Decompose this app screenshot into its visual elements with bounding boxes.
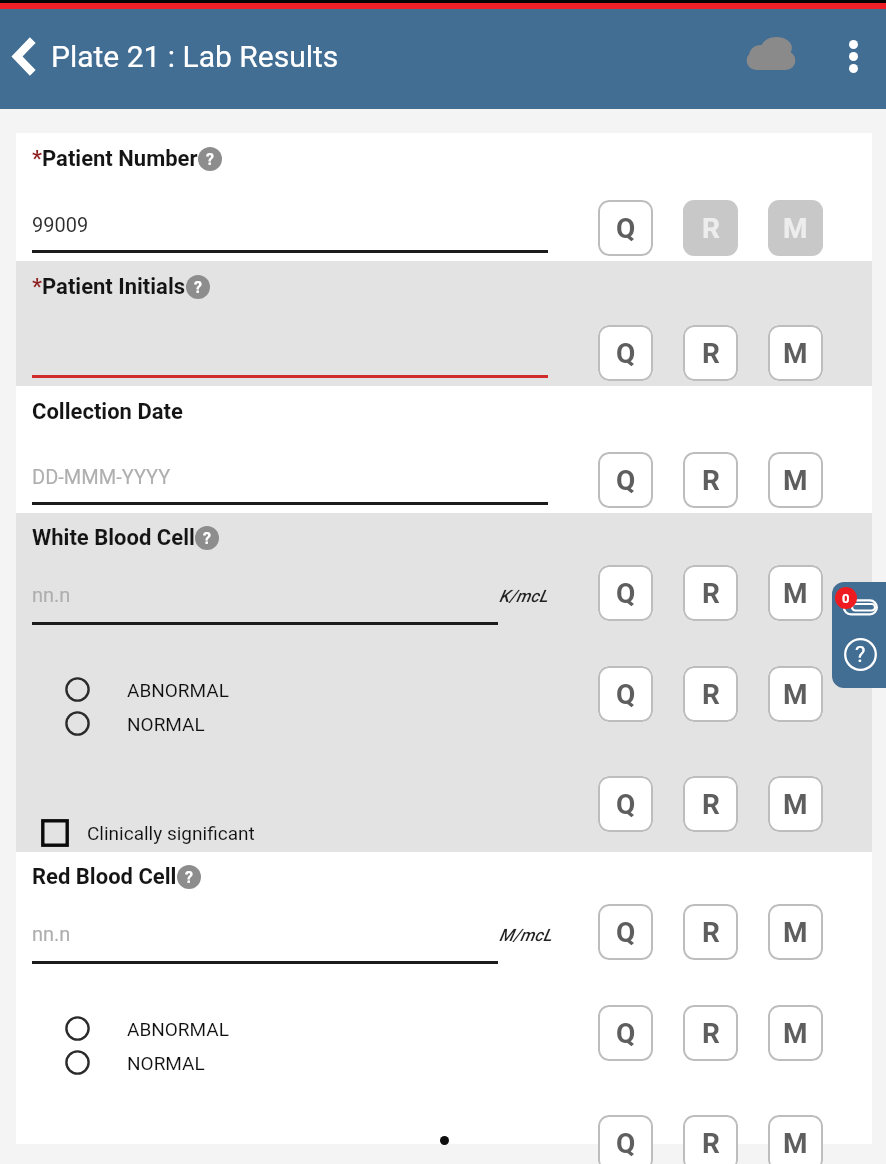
staticText: ABNORMAL: [127, 679, 229, 701]
button[interactable]: R: [683, 325, 738, 381]
staticText: Red Blood Cell: [32, 864, 177, 890]
button[interactable]: M: [768, 452, 823, 508]
staticText: Q: [616, 1017, 636, 1050]
staticText: R: [702, 1127, 720, 1160]
staticText: NORMAL: [127, 713, 205, 735]
staticText: Q: [616, 788, 636, 821]
staticText: NORMAL: [127, 1052, 205, 1074]
staticText: M: [783, 916, 808, 949]
button[interactable]: Help: [844, 638, 877, 671]
button[interactable]: M: [768, 666, 823, 722]
staticText: Q: [616, 337, 636, 370]
button[interactable]: M: [768, 776, 823, 832]
button[interactable]: M: [768, 200, 823, 256]
button[interactable]: Attachments: [843, 598, 879, 622]
staticText: M: [783, 577, 808, 610]
button[interactable]: R: [683, 200, 738, 256]
staticText: R: [702, 337, 720, 370]
staticText: R: [702, 788, 720, 821]
staticText: Q: [616, 577, 636, 610]
button[interactable]: Q: [598, 452, 653, 508]
button[interactable]: Back: [13, 39, 34, 74]
button[interactable]: Select option: [65, 677, 90, 702]
staticText: Clinically significant: [87, 822, 255, 844]
button[interactable]: M: [768, 1115, 823, 1164]
staticText: Patient Number: [42, 146, 198, 172]
staticText: R: [702, 212, 720, 245]
staticText: M: [783, 1127, 808, 1160]
staticText: M: [783, 337, 808, 370]
staticText: ?: [185, 868, 193, 887]
staticText: M: [783, 464, 808, 497]
other: Back: [13, 39, 34, 74]
staticText: White Blood Cell: [32, 525, 195, 551]
staticText: M: [783, 788, 808, 821]
button[interactable]: M: [768, 1005, 823, 1061]
button[interactable]: R: [683, 1005, 738, 1061]
button[interactable]: Select option: [65, 1050, 90, 1075]
staticText: Q: [616, 916, 636, 949]
button[interactable]: More options: [835, 31, 871, 81]
button[interactable]: Q: [598, 325, 653, 381]
staticText: M: [783, 212, 808, 245]
staticText: ABNORMAL: [127, 1018, 229, 1040]
button[interactable]: Q: [598, 1115, 653, 1164]
button[interactable]: R: [683, 666, 738, 722]
staticText: Q: [616, 464, 636, 497]
button[interactable]: Help: [195, 526, 219, 550]
staticText: 99009: [32, 213, 89, 236]
staticText: R: [702, 577, 720, 610]
button[interactable]: Help: [198, 147, 222, 171]
staticText: DD-MMM-YYYY: [32, 465, 171, 488]
staticText: nn.n: [32, 583, 71, 606]
staticText: M: [783, 1017, 808, 1050]
staticText: Collection Date: [32, 399, 183, 425]
button[interactable]: Help: [186, 275, 210, 299]
button[interactable]: Q: [598, 565, 653, 621]
staticText: K/mcL: [499, 586, 548, 606]
button[interactable]: Select option: [65, 711, 90, 736]
button[interactable]: Q: [598, 200, 653, 256]
staticText: nn.n: [32, 922, 71, 945]
staticText: M: [783, 678, 808, 711]
button[interactable]: R: [683, 1115, 738, 1164]
staticText: 0: [842, 591, 850, 606]
staticText: *: [32, 146, 42, 172]
button[interactable]: Q: [598, 666, 653, 722]
button[interactable]: R: [683, 904, 738, 960]
button[interactable]: R: [683, 776, 738, 832]
staticText: R: [702, 1017, 720, 1050]
staticText: Plate 21 : Lab Results: [51, 39, 339, 74]
staticText: Q: [616, 1127, 636, 1160]
button[interactable]: Clinically significant: [41, 819, 69, 847]
button[interactable]: Help: [177, 865, 201, 889]
button[interactable]: M: [768, 565, 823, 621]
button[interactable]: M: [768, 325, 823, 381]
staticText: ?: [855, 642, 866, 668]
staticText: ?: [194, 278, 202, 297]
button[interactable]: Q: [598, 776, 653, 832]
staticText: M/mcL: [499, 925, 552, 945]
staticText: ?: [206, 150, 214, 169]
button[interactable]: Sync: [742, 37, 800, 70]
button[interactable]: Select option: [65, 1016, 90, 1041]
staticText: Q: [616, 678, 636, 711]
staticText: Q: [616, 212, 636, 245]
staticText: R: [702, 916, 720, 949]
staticText: R: [702, 678, 720, 711]
staticText: ?: [203, 529, 211, 548]
button[interactable]: Q: [598, 904, 653, 960]
button[interactable]: Q: [598, 1005, 653, 1061]
staticText: Patient Initials: [42, 274, 186, 300]
button[interactable]: R: [683, 565, 738, 621]
button[interactable]: R: [683, 452, 738, 508]
staticText: *: [32, 274, 42, 300]
button[interactable]: M: [768, 904, 823, 960]
staticText: R: [702, 464, 720, 497]
